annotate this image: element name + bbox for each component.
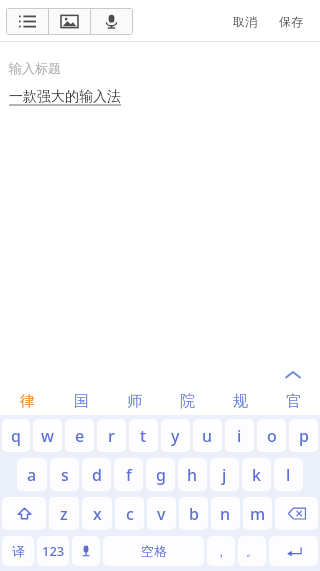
staticText: b	[189, 503, 199, 525]
staticText: m	[250, 503, 266, 525]
button[interactable]: y	[161, 419, 190, 452]
staticText: 保存	[279, 14, 303, 29]
button[interactable]: 规	[214, 387, 267, 415]
staticText: s	[61, 464, 69, 486]
button[interactable]: l	[274, 458, 303, 491]
staticText: h	[187, 464, 198, 486]
button[interactable]: 国	[54, 387, 108, 415]
button[interactable]: d	[82, 458, 111, 491]
button[interactable]: List	[7, 9, 48, 34]
button[interactable]: ，	[207, 536, 235, 566]
button[interactable]: 院	[161, 387, 214, 415]
staticText: 输入标题	[9, 60, 61, 76]
button[interactable]: 师	[108, 387, 161, 415]
button[interactable]: g	[146, 458, 175, 491]
staticText: n	[220, 503, 231, 525]
staticText: 律	[20, 392, 35, 411]
button[interactable]: w	[33, 419, 62, 452]
button[interactable]: Enter	[269, 536, 318, 566]
staticText: 取消	[233, 14, 257, 29]
staticText: e	[75, 425, 85, 447]
button[interactable]: 译	[2, 536, 34, 566]
button[interactable]: z	[49, 497, 79, 530]
staticText: 译	[12, 543, 25, 559]
staticText: a	[27, 464, 37, 486]
staticText: 。	[246, 544, 258, 559]
button[interactable]: t	[129, 419, 158, 452]
staticText: p	[299, 425, 309, 447]
button[interactable]: f	[114, 458, 143, 491]
staticText: 规	[233, 392, 248, 411]
button[interactable]: o	[257, 419, 286, 452]
staticText: y	[171, 425, 180, 447]
button[interactable]: i	[225, 419, 254, 452]
button[interactable]: s	[50, 458, 79, 491]
button[interactable]: x	[82, 497, 112, 530]
button[interactable]: Voice input	[91, 9, 132, 34]
button[interactable]: 律	[0, 387, 54, 415]
button[interactable]: Insert image	[49, 9, 90, 34]
button[interactable]: 官	[267, 387, 320, 415]
staticText: k	[252, 464, 261, 486]
staticText: 国	[74, 392, 89, 411]
button[interactable]: q	[2, 419, 30, 452]
staticText: v	[157, 503, 166, 525]
button[interactable]: u	[193, 419, 222, 452]
staticText: 师	[127, 392, 142, 411]
staticText: 空格	[141, 543, 167, 559]
button[interactable]: k	[242, 458, 271, 491]
button[interactable]: r	[97, 419, 126, 452]
staticText: g	[156, 464, 166, 486]
button[interactable]: 取消	[228, 9, 262, 34]
button[interactable]: Backspace	[275, 497, 318, 530]
staticText: 123	[42, 542, 65, 560]
staticText: r	[108, 425, 115, 447]
staticText: ，	[215, 544, 227, 559]
staticText: z	[60, 503, 68, 525]
staticText: t	[140, 425, 147, 447]
button[interactable]: j	[210, 458, 239, 491]
staticText: j	[222, 464, 227, 486]
staticText: 官	[286, 392, 301, 411]
button[interactable]: b	[179, 497, 208, 530]
button[interactable]: 123	[37, 536, 69, 566]
staticText: c	[126, 503, 134, 525]
button[interactable]: a	[17, 458, 47, 491]
staticText: f	[126, 464, 132, 486]
staticText: q	[11, 425, 21, 447]
staticText: l	[286, 464, 291, 486]
staticText: o	[267, 425, 277, 447]
button[interactable]: v	[147, 497, 176, 530]
button[interactable]: 空格	[103, 536, 204, 566]
staticText: 院	[180, 392, 195, 411]
button[interactable]: Shift	[2, 497, 46, 530]
staticText: i	[237, 425, 242, 447]
button[interactable]: n	[211, 497, 240, 530]
button[interactable]: Hide keyboard	[282, 364, 304, 386]
staticText: w	[41, 425, 54, 447]
button[interactable]: m	[243, 497, 272, 530]
staticText: u	[202, 425, 213, 447]
staticText: 一款强大的输入法	[9, 88, 121, 106]
button[interactable]: c	[115, 497, 144, 530]
button[interactable]: 。	[238, 536, 266, 566]
button[interactable]: e	[65, 419, 94, 452]
button[interactable]: 保存	[274, 9, 308, 34]
staticText: x	[93, 503, 102, 525]
button[interactable]: Voice input	[72, 536, 100, 566]
button[interactable]: h	[178, 458, 207, 491]
staticText: d	[92, 464, 102, 486]
button[interactable]: p	[289, 419, 318, 452]
